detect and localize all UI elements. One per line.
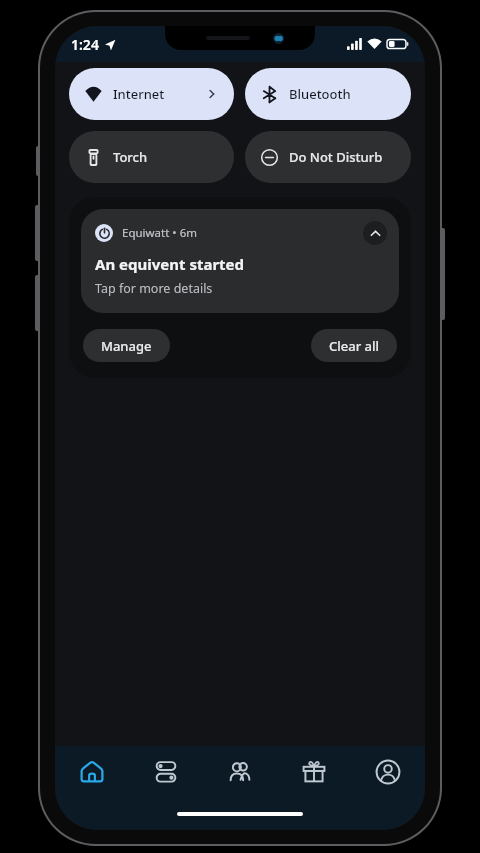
staticText: Bluetooth <box>289 85 351 103</box>
button[interactable]: Manage <box>83 329 170 362</box>
staticText: Tap for more details <box>95 280 213 297</box>
staticText: Torch <box>113 148 148 166</box>
button[interactable]: Equiwatt • 6m <box>81 209 399 313</box>
button[interactable]: Clear all <box>311 329 397 362</box>
button[interactable]: Do Not Disturb <box>245 131 411 183</box>
staticText: Clear all <box>329 337 379 355</box>
staticText: An equivent started <box>95 254 245 274</box>
staticText: 1:24 <box>71 35 99 54</box>
staticText: Internet <box>113 85 165 103</box>
button[interactable]: Rewards <box>277 746 351 798</box>
button[interactable]: Collapse notification <box>363 221 387 245</box>
button[interactable]: Home <box>55 746 129 798</box>
button[interactable]: Profile <box>351 746 425 798</box>
button[interactable]: Community <box>203 746 277 798</box>
button[interactable]: Internet <box>69 68 234 120</box>
staticText: Manage <box>101 337 152 355</box>
staticText: Equiwatt • 6m <box>122 225 197 241</box>
button[interactable]: Bluetooth <box>245 68 411 120</box>
button[interactable]: Devices <box>129 746 203 798</box>
button[interactable]: Torch <box>69 131 234 183</box>
staticText: Do Not Disturb <box>289 148 383 166</box>
